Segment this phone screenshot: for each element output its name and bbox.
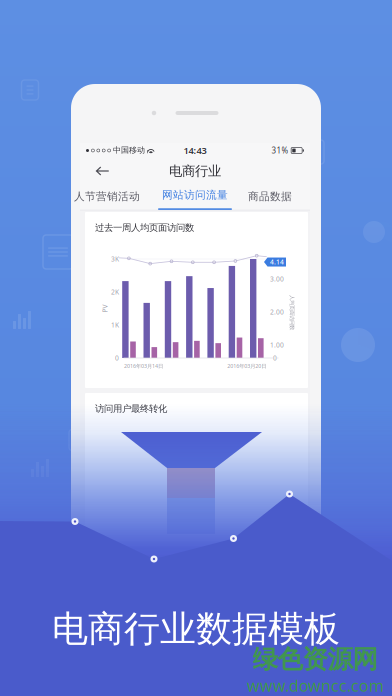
staticText: 2016年03月20日: [227, 362, 266, 370]
staticText: 电商行业: [169, 163, 221, 179]
staticText: 4.14: [270, 258, 284, 266]
staticText: PV: [101, 304, 109, 313]
staticText: 中国移动: [113, 145, 145, 155]
staticText: 人均页面访问数: [274, 309, 309, 316]
staticText: 绿色资源网: [252, 644, 377, 675]
staticText: 电商行业数据模板: [52, 607, 340, 651]
staticText: 3K: [111, 255, 119, 263]
staticText: www.downcc.com: [246, 675, 383, 696]
staticText: 0: [115, 354, 119, 362]
staticText: 网站访问流量: [162, 188, 228, 201]
staticText: 1K: [111, 321, 119, 329]
staticText: 2K: [111, 288, 119, 296]
staticText: 14:43: [183, 144, 206, 157]
staticText: 访问用户最终转化: [95, 403, 167, 414]
button[interactable]: 人节营销活动: [67, 182, 147, 210]
staticText: 0: [273, 354, 277, 362]
staticText: 3.00: [270, 275, 284, 283]
staticText: 人节营销活动: [74, 190, 140, 203]
staticText: 2016年03月14日: [124, 362, 163, 370]
staticText: 商品数据: [248, 190, 292, 203]
button[interactable]: Back: [87, 158, 118, 183]
button[interactable]: 商品数据: [242, 182, 298, 210]
staticText: 过去一周人均页面访问数: [95, 222, 194, 233]
staticText: 2.00: [270, 308, 284, 316]
staticText: 1.00: [270, 341, 284, 349]
staticText: 31%: [271, 145, 288, 156]
button[interactable]: 网站访问流量: [156, 182, 234, 210]
